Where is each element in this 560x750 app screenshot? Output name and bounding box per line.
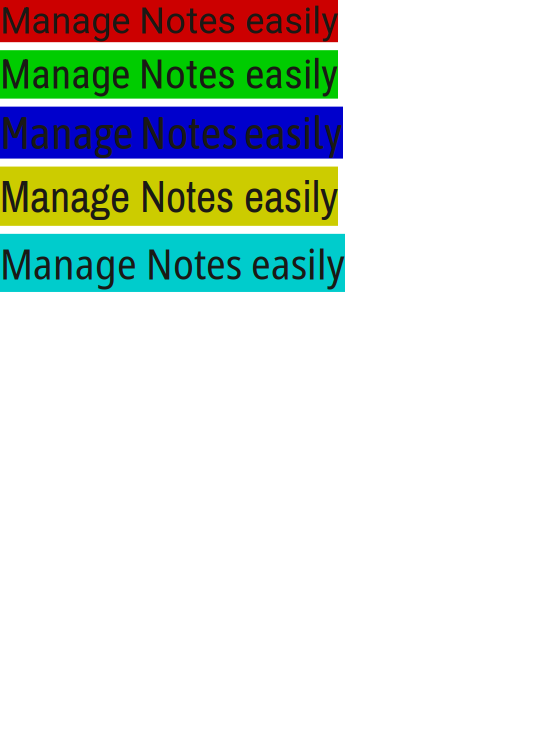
staticText: Manage Notes easily bbox=[0, 167, 338, 226]
staticText: Manage Notes easily bbox=[0, 0, 338, 42]
staticText: Manage Notes easily bbox=[0, 234, 345, 292]
staticText: Manage Notes easily bbox=[0, 107, 343, 159]
staticText: Manage Notes easily bbox=[0, 50, 338, 99]
